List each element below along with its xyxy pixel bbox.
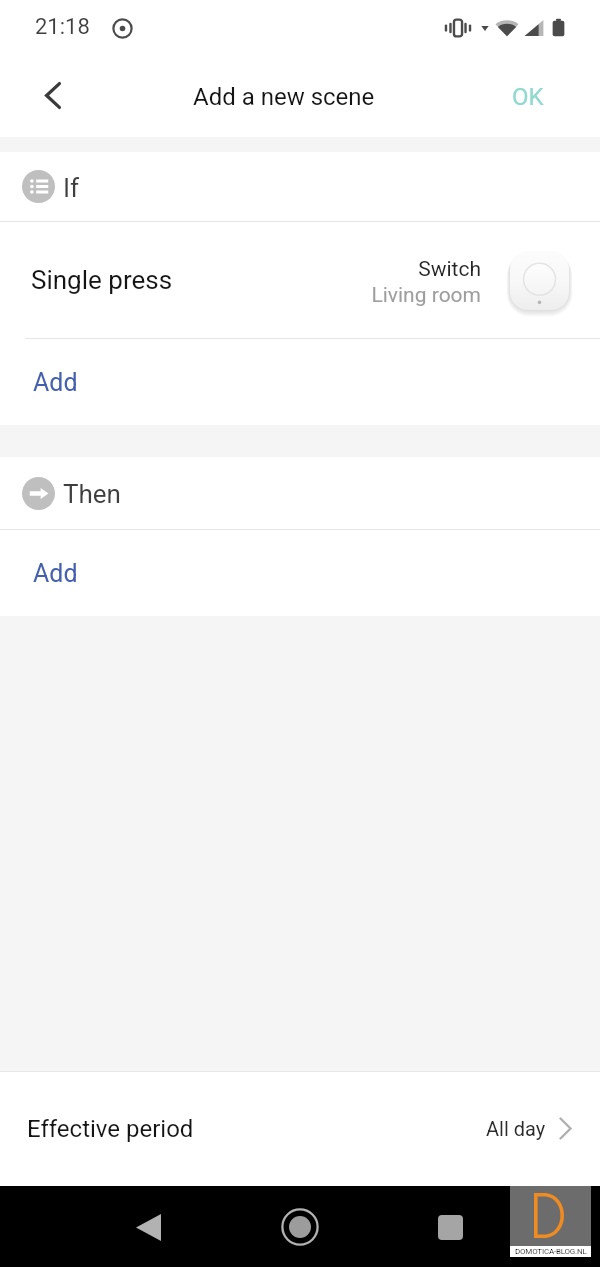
button[interactable]: Back [124, 1203, 172, 1251]
staticText: Add [33, 368, 78, 397]
staticText: If [63, 173, 80, 203]
staticText: Single press [31, 265, 173, 295]
button[interactable]: Back [29, 73, 77, 121]
staticText: OK [512, 83, 544, 111]
button[interactable]: If [0, 152, 600, 221]
button[interactable]: Recent apps [426, 1203, 474, 1251]
staticText: DOMOTICA-BLOG.NL [515, 1247, 587, 1256]
staticText: Add a new scene [193, 83, 375, 111]
button[interactable]: Effective period [0, 1072, 600, 1185]
button[interactable]: Home [274, 1201, 326, 1253]
staticText: Switch [418, 257, 481, 282]
staticText: Then [63, 479, 121, 509]
staticText: All day [486, 1117, 546, 1140]
button[interactable]: Then [0, 457, 600, 529]
staticText: Add [33, 559, 78, 588]
button[interactable]: Add [0, 530, 600, 616]
staticText: Living room [371, 283, 481, 308]
staticText: 21:18 [35, 14, 90, 40]
button[interactable]: Add [0, 339, 600, 425]
button[interactable]: OK [485, 69, 600, 125]
staticText: Effective period [27, 1115, 194, 1143]
button[interactable]: Single press [0, 222, 600, 338]
